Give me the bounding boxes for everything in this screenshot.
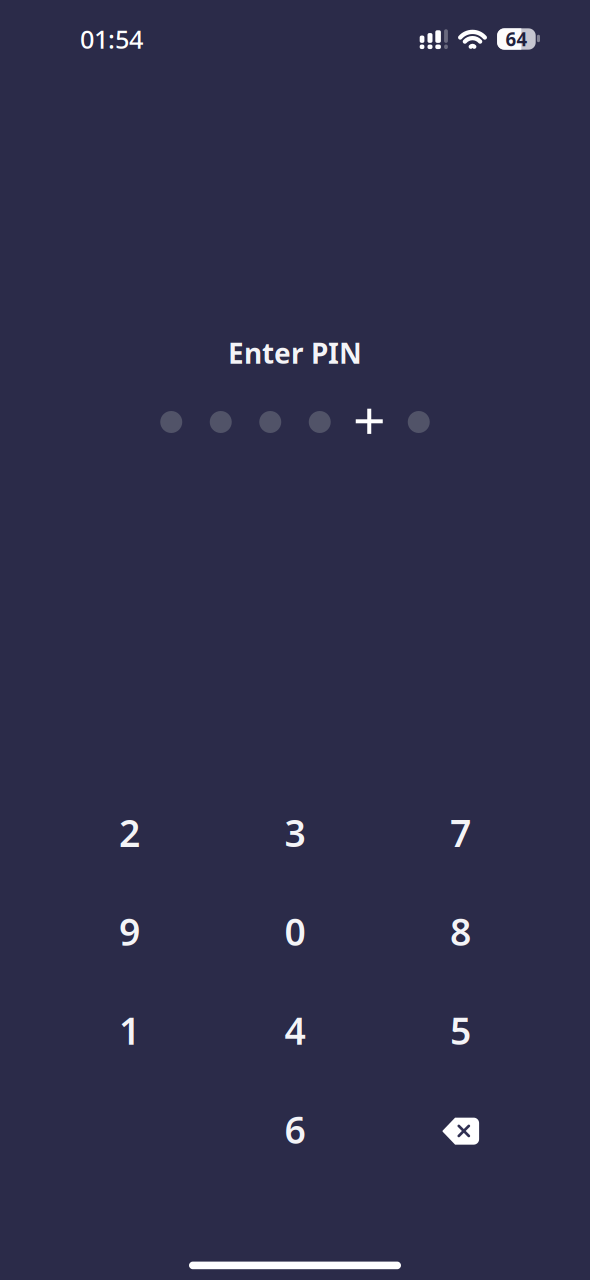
button[interactable]: 6 xyxy=(212,1080,378,1179)
button[interactable]: 7 xyxy=(378,783,543,882)
staticText: 2 xyxy=(119,808,140,857)
staticText: 7 xyxy=(450,808,471,857)
staticText: Enter PIN xyxy=(228,334,362,372)
staticText: 64 xyxy=(505,27,527,51)
button[interactable]: 4 xyxy=(212,981,378,1080)
staticText: 5 xyxy=(450,1005,471,1055)
staticText: 0 xyxy=(284,907,305,956)
button[interactable]: 2 xyxy=(47,783,212,882)
button[interactable]: 1 xyxy=(47,981,212,1080)
button[interactable]: 3 xyxy=(212,783,378,882)
button[interactable]: Delete xyxy=(378,1080,543,1179)
staticText: 4 xyxy=(284,1005,305,1055)
button[interactable]: 0 xyxy=(212,882,378,981)
button[interactable]: 9 xyxy=(47,882,212,981)
staticText: 01:54 xyxy=(80,22,143,56)
staticText: 9 xyxy=(119,907,140,956)
button[interactable]: 5 xyxy=(378,981,543,1080)
staticText: 1 xyxy=(119,1005,140,1055)
staticText: 3 xyxy=(284,808,305,857)
staticText: 8 xyxy=(450,907,471,956)
staticText: 6 xyxy=(284,1104,305,1154)
button[interactable]: 8 xyxy=(378,882,543,981)
